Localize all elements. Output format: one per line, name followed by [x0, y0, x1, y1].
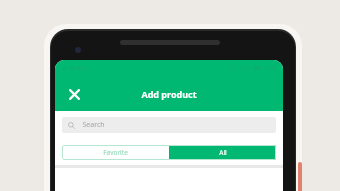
button[interactable]: All: [169, 145, 276, 160]
staticText: Favorite: [103, 148, 128, 157]
staticText: 100%: [238, 65, 250, 71]
staticText: 09:49: [264, 65, 276, 71]
staticText: Add product: [141, 88, 197, 100]
staticText: Search: [82, 120, 105, 130]
staticText: All: [219, 148, 227, 157]
button[interactable]: Favorite: [62, 145, 169, 160]
button[interactable]: Close: [61, 81, 87, 107]
button[interactable]: Search: [62, 117, 276, 133]
